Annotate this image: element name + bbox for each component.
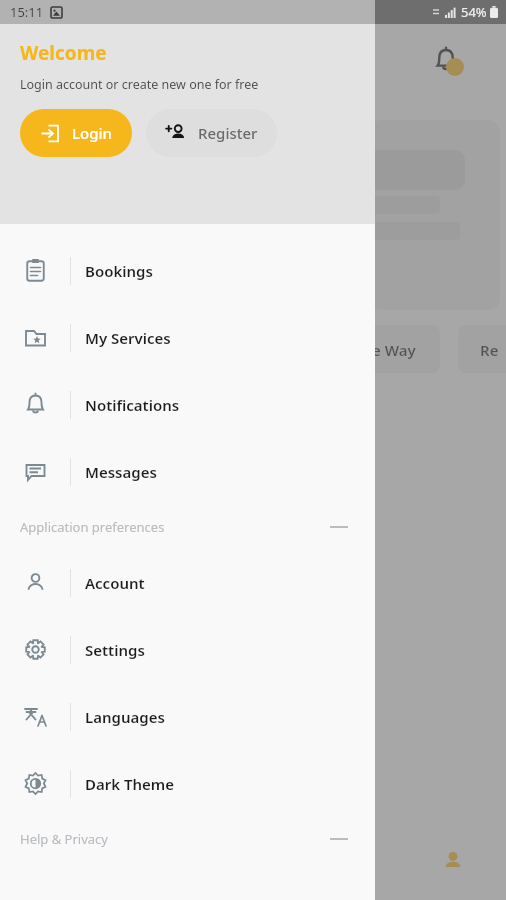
staticText: My Services <box>85 328 171 348</box>
button[interactable]: Bookings <box>0 237 375 304</box>
staticText: Notifications <box>85 395 180 415</box>
staticText: Application preferences <box>20 518 165 536</box>
staticText: Bookings <box>85 261 153 281</box>
staticText: Dark Theme <box>85 774 175 794</box>
staticText: Settings <box>85 640 145 660</box>
button[interactable]: Messages <box>0 438 375 505</box>
staticText: Register <box>198 123 258 143</box>
button[interactable]: Settings <box>0 616 375 683</box>
staticText: e Way <box>372 340 416 360</box>
button[interactable]: Login <box>20 109 132 157</box>
staticText: Languages <box>85 707 165 727</box>
button[interactable]: Dark Theme <box>0 750 375 817</box>
button[interactable]: My Services <box>0 304 375 371</box>
staticText: Messages <box>85 462 157 482</box>
staticText: Re <box>480 340 499 360</box>
staticText: Help & Privacy <box>20 830 108 848</box>
staticText: Welcome <box>20 40 107 66</box>
button[interactable]: Notifications <box>0 371 375 438</box>
staticText: Login <box>72 123 112 143</box>
button[interactable]: Register <box>146 109 277 157</box>
staticText: Account <box>85 573 145 593</box>
staticText: Login account or create new one for free <box>20 76 259 93</box>
button[interactable]: Account <box>0 549 375 616</box>
staticText: 54% <box>461 3 487 21</box>
staticText: 15:11 <box>10 3 44 21</box>
button[interactable]: Languages <box>0 683 375 750</box>
